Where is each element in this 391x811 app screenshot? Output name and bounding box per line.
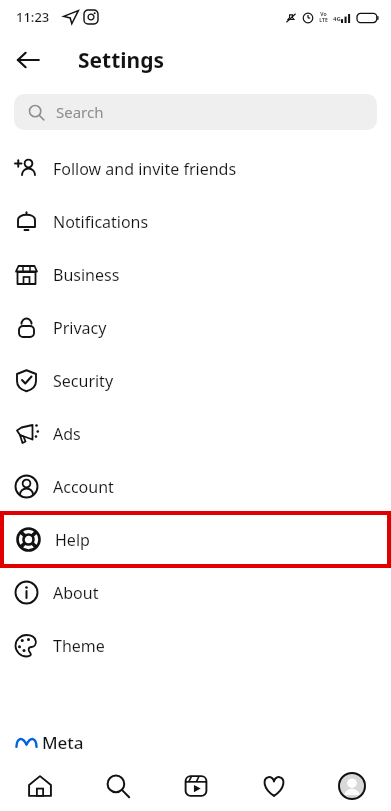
button[interactable]: Business [0,248,391,301]
staticText: 4G [333,15,341,23]
staticText: About [53,582,99,604]
button[interactable]: Search [79,760,157,811]
button[interactable]: Ads [0,407,391,460]
staticText: Business [53,264,120,286]
button[interactable]: Privacy [0,301,391,354]
button[interactable]: Search [14,94,377,130]
staticText: Search [56,102,104,122]
button[interactable]: Activity [235,760,313,811]
button[interactable]: Back [6,38,50,82]
button[interactable]: Help [2,513,389,566]
staticText: Theme [53,635,105,657]
button[interactable]: Home [0,760,79,811]
staticText: Notifications [53,211,149,233]
button[interactable]: Account [0,460,391,513]
button[interactable]: Theme [0,619,391,672]
button[interactable]: Security [0,354,391,407]
staticText: Security [53,370,114,392]
staticText: Follow and invite friends [53,158,237,180]
staticText: Vo LTE [319,11,328,24]
button[interactable]: Profile [313,760,391,811]
staticText: Account [53,476,114,498]
button[interactable]: Follow and invite friends [0,142,391,195]
staticText: Privacy [53,317,107,339]
button[interactable]: About [0,566,391,619]
staticText: Meta [42,731,84,754]
button[interactable]: Notifications [0,195,391,248]
staticText: Help [55,529,90,551]
staticText: Ads [53,423,81,445]
staticText: Settings [78,46,165,75]
button[interactable]: Reels [157,760,235,811]
staticText: 11:23 [16,8,50,26]
